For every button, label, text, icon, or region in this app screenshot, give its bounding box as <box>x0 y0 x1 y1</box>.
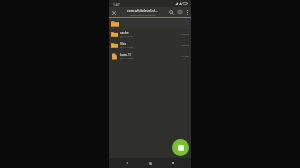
staticText: /search/android/data <box>130 13 155 16</box>
staticText: 1.2 MB <box>181 55 189 58</box>
button[interactable]: com.whitelevel.sl… <box>118 8 167 16</box>
button[interactable]: Change view <box>176 8 184 16</box>
staticText: 3 items <box>181 33 189 36</box>
button[interactable] <box>109 18 191 29</box>
button[interactable]: Search <box>167 8 176 17</box>
staticText: Jul 14 12:02 <box>120 46 133 49</box>
button[interactable]: base.11 <box>109 51 191 62</box>
staticText: 6 items <box>181 44 189 47</box>
staticText: Jul 14 12:02 <box>120 57 133 60</box>
button[interactable]: files <box>109 40 191 51</box>
button[interactable]: Home <box>145 158 155 168</box>
staticText: Jul 14 12:02 <box>120 35 133 38</box>
staticText: com.whitelevel.sl… <box>127 8 158 13</box>
staticText: files <box>120 42 127 46</box>
button[interactable]: More options <box>184 9 191 16</box>
staticText: 1:47 <box>113 2 120 6</box>
button[interactable]: Stop recording <box>172 139 189 156</box>
button[interactable]: Close <box>109 8 118 17</box>
staticText: cache <box>120 31 129 35</box>
staticText: base.11 <box>120 53 132 57</box>
button[interactable]: Recent apps <box>168 158 178 168</box>
button[interactable]: cache <box>109 29 191 40</box>
button[interactable]: Back <box>122 158 132 168</box>
